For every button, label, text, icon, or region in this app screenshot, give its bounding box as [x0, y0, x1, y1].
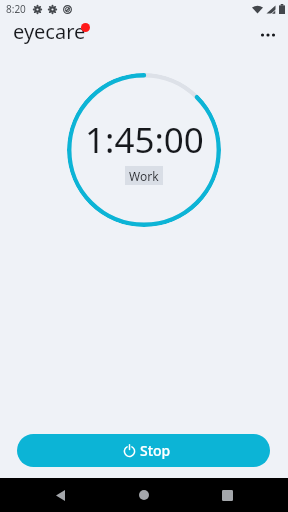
- button[interactable]: More options: [248, 15, 288, 55]
- button[interactable]: Recents: [203, 478, 251, 512]
- staticText: 8:20: [6, 2, 26, 16]
- staticText: Work: [129, 168, 159, 184]
- staticText: Stop: [140, 441, 171, 460]
- button[interactable]: Back: [36, 478, 84, 512]
- button[interactable]: Timer 1:45:00 Work: [67, 73, 221, 227]
- staticText: eyecare: [13, 18, 86, 45]
- button[interactable]: Home: [120, 478, 168, 512]
- staticText: 1:45:00: [85, 116, 204, 164]
- button[interactable]: Stop: [17, 434, 270, 467]
